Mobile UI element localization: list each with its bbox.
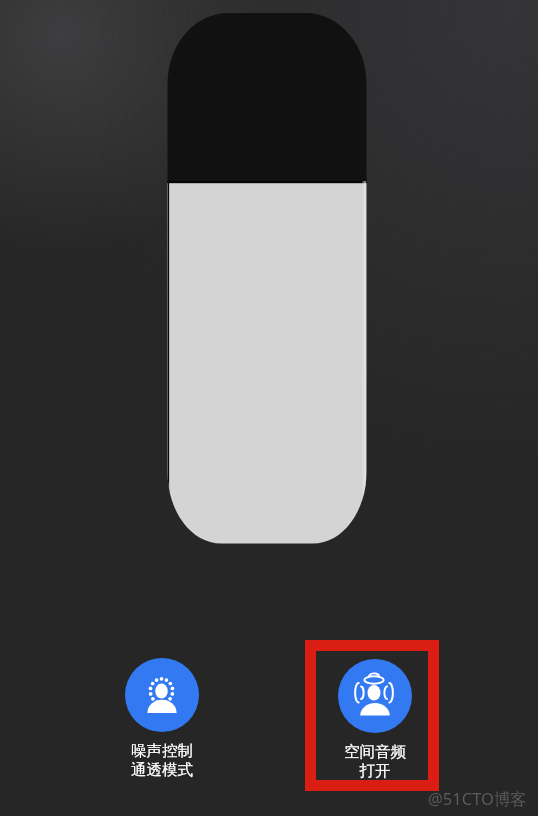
button[interactable]: 噪声控制，通透模式 xyxy=(105,658,219,780)
button[interactable]: 空间音频，打开 xyxy=(318,659,432,781)
staticText: @51CTO博客 xyxy=(428,787,527,810)
staticText: 空间音频 打开 xyxy=(318,742,432,781)
staticText: 噪声控制 通透模式 xyxy=(105,741,219,780)
